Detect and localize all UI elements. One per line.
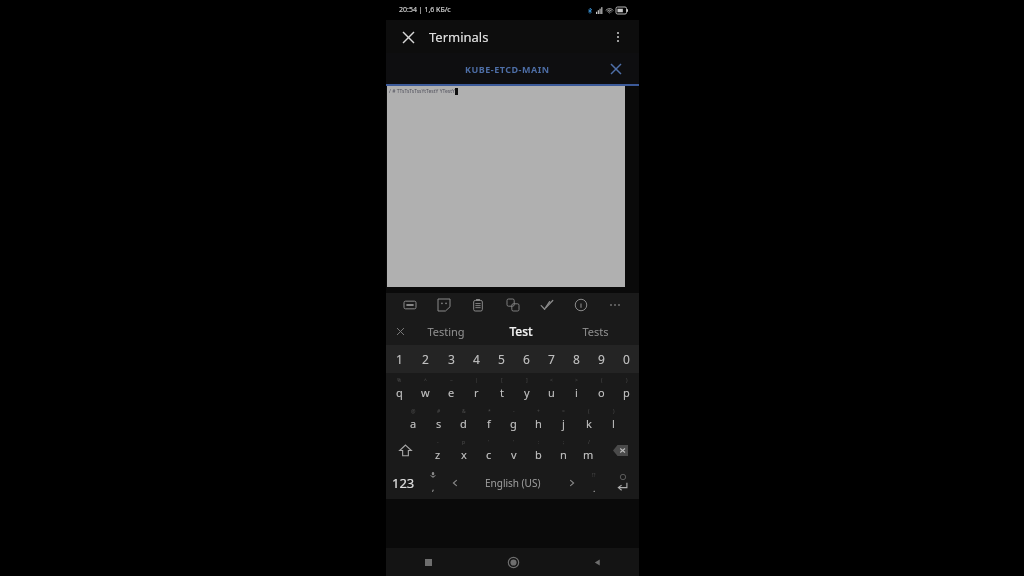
button[interactable]: Stickers	[434, 295, 454, 315]
button[interactable]: Previous language	[444, 466, 465, 499]
button[interactable]: Test	[483, 317, 558, 345]
button[interactable]: Tests	[558, 317, 633, 345]
button[interactable]: More	[605, 295, 625, 315]
staticText: p	[462, 439, 466, 446]
button[interactable]: =	[551, 404, 576, 435]
staticText: %	[397, 377, 402, 384]
staticText: Test	[509, 323, 533, 339]
button[interactable]: 6	[514, 345, 539, 373]
staticText: g	[510, 416, 517, 431]
button[interactable]: English (US)	[465, 466, 561, 499]
button[interactable]: Recents	[386, 548, 471, 576]
staticText: &	[462, 408, 466, 415]
button[interactable]: Dismiss suggestions	[391, 322, 409, 340]
button[interactable]: %	[386, 373, 412, 404]
staticText: j	[562, 416, 565, 431]
staticText: *	[488, 408, 491, 415]
button[interactable]: Home	[471, 548, 555, 576]
button[interactable]: Spell check	[537, 295, 557, 315]
button[interactable]: Close	[395, 24, 421, 50]
button[interactable]: 4	[464, 345, 489, 373]
button[interactable]: 3	[438, 345, 464, 373]
button[interactable]: |	[464, 373, 489, 404]
button[interactable]: )	[601, 404, 626, 435]
staticText: m	[583, 447, 594, 462]
button[interactable]: Testing	[408, 317, 483, 345]
button[interactable]: [	[489, 373, 514, 404]
button[interactable]: 7	[539, 345, 564, 373]
button[interactable]: #	[426, 404, 451, 435]
staticText: h	[535, 416, 542, 431]
staticText: r	[474, 385, 479, 400]
button[interactable]: ^	[412, 373, 438, 404]
button[interactable]: +	[526, 404, 551, 435]
button[interactable]: Clipboard	[468, 295, 488, 315]
staticText: z	[435, 447, 441, 462]
staticText: |	[475, 377, 478, 384]
button[interactable]: )	[614, 373, 639, 404]
button[interactable]: ~	[438, 373, 464, 404]
button[interactable]: (	[576, 404, 601, 435]
button[interactable]: 123	[386, 466, 421, 499]
button[interactable]: /	[576, 435, 601, 466]
staticText: '	[513, 439, 515, 446]
staticText: y	[524, 385, 530, 400]
button[interactable]: ;	[551, 435, 576, 466]
button[interactable]: :	[526, 435, 551, 466]
button[interactable]: *	[476, 404, 501, 435]
button[interactable]: KUBE-ETCD-MAIN	[386, 53, 639, 84]
button[interactable]: 2	[412, 345, 438, 373]
button[interactable]: !?	[582, 466, 605, 499]
button[interactable]: / # TTsTsTsTssYtTestY YTestY	[387, 86, 625, 287]
button[interactable]: p	[451, 435, 476, 466]
staticText: c	[486, 447, 492, 462]
staticText: )	[613, 408, 615, 415]
staticText: 4	[473, 351, 480, 367]
staticText: 2	[422, 351, 429, 367]
button[interactable]: Close tab	[605, 58, 627, 80]
staticText: ;	[563, 439, 565, 446]
staticText: n	[560, 447, 567, 462]
staticText: s	[436, 416, 442, 431]
button[interactable]: Backspace	[601, 435, 639, 466]
button[interactable]: 5	[489, 345, 514, 373]
staticText: (	[588, 408, 590, 415]
button[interactable]: 1	[386, 345, 412, 373]
button[interactable]: '	[476, 435, 501, 466]
button[interactable]: Enter	[605, 466, 639, 499]
button[interactable]: -	[501, 404, 526, 435]
staticText: i	[575, 385, 578, 400]
button[interactable]: Next language	[561, 466, 582, 499]
button[interactable]: ]	[514, 373, 539, 404]
staticText: d	[460, 416, 467, 431]
staticText: (	[601, 377, 603, 384]
staticText: 5	[498, 351, 505, 367]
staticText: -	[513, 408, 515, 415]
button[interactable]: 0	[614, 345, 639, 373]
button[interactable]: >	[564, 373, 589, 404]
staticText: Tests	[582, 324, 609, 339]
button[interactable]: Info	[571, 295, 591, 315]
button[interactable]: Translate	[503, 295, 523, 315]
staticText: 7	[548, 351, 555, 367]
button[interactable]: GIF	[400, 295, 420, 315]
staticText: )	[626, 377, 628, 384]
button[interactable]: (	[589, 373, 614, 404]
button[interactable]: Shift	[386, 435, 425, 466]
button[interactable]: Back	[555, 548, 639, 576]
button[interactable]: Voice input	[421, 466, 444, 499]
button[interactable]: <	[539, 373, 564, 404]
button[interactable]: 9	[589, 345, 614, 373]
button[interactable]: 8	[564, 345, 589, 373]
button[interactable]: -	[425, 435, 451, 466]
staticText: /	[588, 439, 590, 446]
staticText: p	[623, 385, 630, 400]
button[interactable]: &	[451, 404, 476, 435]
button[interactable]: More options	[605, 24, 631, 50]
staticText: ]	[526, 377, 528, 384]
button[interactable]: '	[501, 435, 526, 466]
staticText: [	[501, 377, 503, 384]
staticText: ,	[432, 482, 435, 493]
staticText: >	[575, 377, 578, 384]
button[interactable]: @	[400, 404, 426, 435]
